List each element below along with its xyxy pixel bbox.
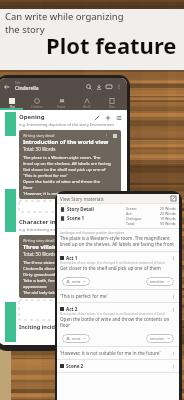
button[interactable]: Act 2 <box>57 303 179 331</box>
staticText: Description of one action. It is changed… <box>60 312 176 316</box>
staticText: lined up on the shelves. All labels are … <box>23 160 117 166</box>
staticText: emotion <box>150 279 165 284</box>
button[interactable]: People <box>49 95 74 110</box>
staticText: Three villains <box>23 243 61 251</box>
staticText: The place is a Western-style room. The m… <box>60 235 179 241</box>
staticText: 'However, it is not suitable for me in t… <box>23 190 117 196</box>
staticText: Dirty grandmother shows up <box>23 271 82 277</box>
staticText: Cinderella classic scene <box>23 265 71 271</box>
button[interactable]: Scene 1 <box>60 215 126 221</box>
button[interactable]: Writing story detail <box>19 235 121 298</box>
staticText: lined up on the shelves. All labels are … <box>60 241 174 247</box>
staticText: 'This is perfect for me' <box>60 293 108 299</box>
button[interactable]: Menu <box>115 114 122 121</box>
staticText: Open the bottle of wine and throw the co… <box>60 316 176 322</box>
button[interactable]: none <box>62 334 90 343</box>
staticText: Note <box>109 105 115 109</box>
staticText: floor <box>23 184 33 190</box>
staticText: 20 Words <box>160 211 176 216</box>
staticText: Total: <box>126 221 136 226</box>
button[interactable]: Back <box>3 83 11 91</box>
button[interactable]: Act 1 <box>57 252 179 274</box>
staticText: Inciting incident <box>19 323 65 330</box>
staticText: Opening <box>19 113 45 121</box>
button[interactable]: Story Detail <box>60 206 126 212</box>
staticText: Scene 2 <box>66 363 84 369</box>
staticText: World <box>83 105 91 109</box>
staticText: Total: 50 Words <box>23 251 56 257</box>
button[interactable]: More <box>115 83 123 91</box>
staticText: the story <box>5 23 45 36</box>
button[interactable]: 'This is perfect for me' <box>57 290 179 302</box>
button[interactable]: Plot <box>0 95 24 110</box>
button[interactable]: Character <box>24 95 49 110</box>
button[interactable]: Expand <box>171 196 176 201</box>
staticText: Plot feature <box>46 30 177 60</box>
staticText: floor <box>60 322 71 328</box>
staticText: Cinderella <box>15 85 39 92</box>
staticText: none <box>72 279 81 284</box>
staticText: Plot <box>10 105 15 109</box>
staticText: The place is a Western-style room. The m… <box>23 154 117 160</box>
staticText: Introduction of the world view <box>23 138 109 146</box>
staticText: e.g. Introducing main characters. Charac… <box>19 227 122 232</box>
staticText: Story Detail <box>67 206 94 212</box>
staticText: Get closer to the shelf and pick up one … <box>60 265 161 271</box>
button[interactable]: World <box>74 95 99 110</box>
staticText: Character <box>31 105 43 109</box>
staticText: 20 Words <box>160 206 176 211</box>
staticText: Act: <box>126 211 133 216</box>
staticText: 'This is perfect for me' <box>23 172 68 178</box>
staticText: Total: 30 Words <box>23 146 56 152</box>
button[interactable]: Download <box>95 83 103 91</box>
staticText: Title <box>15 81 21 85</box>
button[interactable]: Scene 2 <box>57 360 179 372</box>
staticText: Take a bath, feed, and change <box>23 277 84 283</box>
staticText: appearance <box>23 283 47 289</box>
staticText: Get closer to the shelf and pick up one … <box>23 166 117 172</box>
staticText: Act 2 <box>66 306 78 312</box>
staticText: The three sisters go home. <box>23 259 77 265</box>
staticText: emotion <box>150 336 165 341</box>
staticText: Landscape and character position descrip… <box>60 231 125 235</box>
staticText: Scene 1 <box>67 215 85 221</box>
staticText: 50 Words <box>160 221 176 226</box>
staticText: Writing story detail <box>23 133 55 138</box>
button[interactable]: emotion <box>146 334 174 343</box>
staticText: The old lady takes out the pumpkin <box>23 289 95 295</box>
button[interactable]: none <box>62 277 90 286</box>
button[interactable]: Search <box>85 83 93 91</box>
button[interactable]: Note <box>99 95 124 110</box>
staticText: e.g. Interesting depiction of the story … <box>19 122 114 127</box>
staticText: Character introduction <box>19 218 88 226</box>
staticText: none <box>72 336 81 341</box>
button[interactable]: Comment <box>105 83 113 91</box>
staticText: Can write while organizing <box>5 10 124 23</box>
staticText: Writing story detail <box>23 238 55 243</box>
button[interactable]: Writing story detail <box>19 130 121 199</box>
button[interactable]: Add <box>104 114 111 121</box>
staticText: Act 1 <box>66 255 78 261</box>
staticText: 'However, it is not suitable for me in t… <box>60 350 161 356</box>
staticText: Open the bottle of wine and throw the co… <box>23 178 117 184</box>
staticText: 10 Words <box>160 216 176 221</box>
staticText: Scene: <box>126 206 137 211</box>
button[interactable]: Edit <box>93 114 100 121</box>
button[interactable]: 'However, it is not suitable for me in t… <box>57 347 179 359</box>
button[interactable]: emotion <box>146 277 174 286</box>
staticText: People <box>57 105 66 109</box>
staticText: Dialogue: <box>126 216 143 221</box>
staticText: Description of one action. It is changed… <box>60 261 176 265</box>
staticText: View Story materials <box>60 196 104 202</box>
button[interactable]: View Story materials <box>57 194 179 203</box>
